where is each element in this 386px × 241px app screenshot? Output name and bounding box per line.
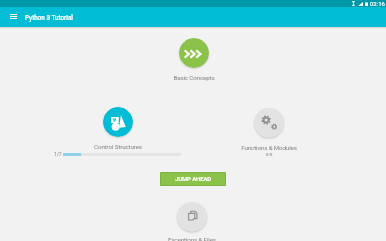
button[interactable]: Control Structures bbox=[58, 107, 178, 150]
staticText: 0/8 bbox=[209, 152, 329, 157]
staticText: 1/7 bbox=[54, 151, 62, 157]
staticText: Exceptions & Files bbox=[132, 236, 252, 241]
staticText: Control Structures bbox=[58, 143, 178, 150]
button[interactable]: Basic Concepts bbox=[134, 38, 254, 81]
button[interactable]: Exceptions & Files bbox=[132, 202, 252, 241]
staticText: Basic Concepts bbox=[134, 74, 254, 81]
staticText: 02:16 bbox=[370, 0, 385, 7]
button[interactable]: Open navigation drawer bbox=[6, 9, 20, 23]
staticText: JUMP AHEAD bbox=[175, 176, 212, 183]
staticText: Functions & Modules bbox=[209, 144, 329, 151]
button[interactable]: JUMP AHEAD bbox=[161, 173, 225, 185]
staticText: Python 3 Tutorial bbox=[25, 14, 73, 21]
button[interactable]: Functions & Modules bbox=[209, 108, 329, 157]
